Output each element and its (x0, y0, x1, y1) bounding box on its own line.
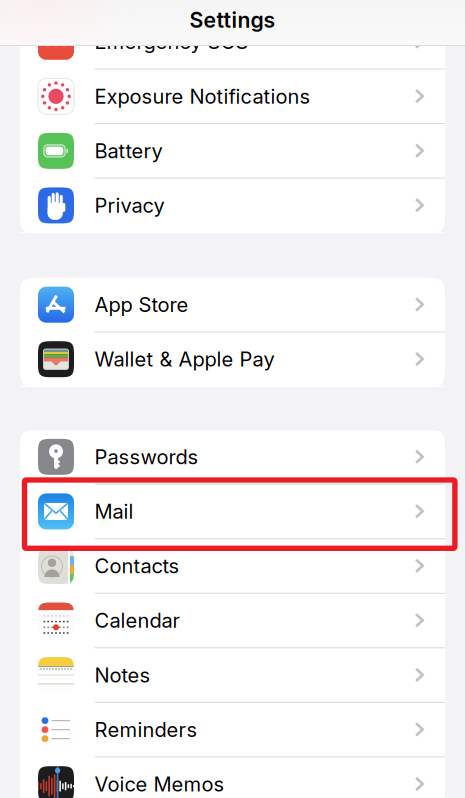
staticText: Settings (189, 7, 275, 33)
staticText: Battery (95, 139, 163, 163)
staticText: Reminders (95, 717, 198, 742)
staticText: App Store (95, 292, 189, 317)
button[interactable]: Contacts (20, 539, 445, 594)
staticText: Wallet & Apple Pay (95, 347, 275, 371)
button[interactable]: Calendar (20, 594, 445, 648)
button[interactable]: App Store (20, 278, 445, 332)
button[interactable]: Notes (20, 648, 445, 703)
button[interactable]: Mail (20, 485, 445, 539)
staticText: Calendar (95, 608, 181, 633)
staticText: SOS (43, 34, 68, 49)
staticText: Mail (95, 499, 134, 524)
button[interactable]: Reminders (20, 703, 445, 757)
staticText: Exposure Notifications (95, 84, 311, 108)
staticText: Emergency SOS (95, 30, 249, 54)
button[interactable]: Wallet & Apple Pay (20, 332, 445, 387)
staticText: Contacts (95, 554, 180, 578)
staticText: Voice Memos (95, 772, 225, 796)
button[interactable]: Battery (20, 124, 445, 179)
button[interactable]: Exposure Notifications (20, 69, 445, 124)
staticText: Privacy (95, 193, 165, 218)
button[interactable]: Passwords (20, 430, 445, 485)
staticText: Notes (95, 663, 151, 687)
button[interactable]: SOS (20, 15, 445, 69)
button[interactable]: Privacy (20, 179, 445, 233)
staticText: Passwords (95, 445, 199, 469)
button[interactable]: Voice Memos (20, 757, 445, 798)
